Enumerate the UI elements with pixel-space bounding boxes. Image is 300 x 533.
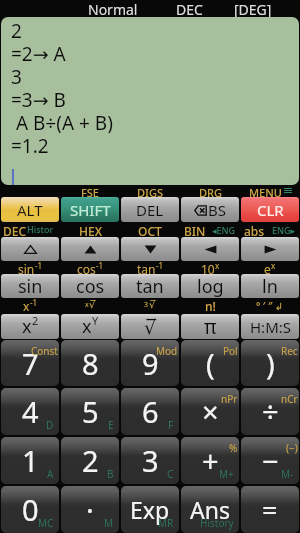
staticText: x [82,314,92,339]
button[interactable]: + [181,437,239,484]
staticText: ALT [17,200,43,220]
button[interactable]: 7 [1,340,59,386]
staticText: M+ [219,467,234,481]
button[interactable]: − [241,437,299,484]
other: Down [144,245,157,254]
button[interactable]: ln [241,274,299,298]
staticText: BS [208,200,226,220]
staticText: √̅ [144,316,157,338]
staticText: Exp [130,494,170,525]
staticText: History [200,516,234,530]
staticText: MENU [249,185,282,197]
staticText: DIGS [137,185,163,197]
button[interactable]: ALT [1,197,59,222]
button[interactable]: sin [1,274,59,298]
button[interactable]: SHIFT [61,197,119,222]
button[interactable]: 8 [61,340,119,386]
staticText: C [167,467,174,481]
staticText: √̅ [149,299,156,311]
button[interactable]: · [61,486,119,533]
staticText: 3 [11,64,22,87]
button[interactable]: 9 [121,340,179,386]
staticText: -1 [30,297,38,308]
button[interactable]: 3 [121,437,179,484]
staticText: sin [18,274,43,298]
staticText: =2→ A [11,41,66,64]
staticText: 10 [201,261,215,274]
staticText: % [229,441,238,455]
staticText: + [202,441,219,480]
staticText: 2 [82,441,99,480]
staticText: cos [77,261,96,274]
button[interactable]: 5 [61,388,119,435]
other: Up [24,245,37,254]
button[interactable]: 1 [1,437,59,484]
button[interactable]: H:M:S [241,314,299,339]
staticText: Pol [223,344,238,358]
staticText: ) [266,344,275,383]
button[interactable]: π [181,314,239,339]
staticText: H:M:S [250,317,291,337]
button[interactable]: 0 [1,486,59,533]
staticText: A [47,467,54,481]
button[interactable]: ( [181,340,239,386]
staticText: cos [76,274,105,298]
staticText: SHIFT [70,200,111,220]
staticText: ° ′ ″ ↲ [256,299,284,313]
staticText: -1 [156,260,164,271]
button[interactable]: x [61,314,119,339]
staticText: OCT [138,223,162,237]
button[interactable]: 2 [61,437,119,484]
staticText: π [204,314,217,339]
button[interactable]: x [1,314,59,339]
button[interactable]: tan [121,274,179,298]
staticText: B [107,467,114,481]
other: Up [84,245,97,254]
button[interactable]: √̅ [121,314,179,339]
staticText: M [104,516,114,530]
button[interactable]: Up [61,237,119,261]
button[interactable]: 6 [121,388,179,435]
button[interactable]: ÷ [241,388,299,435]
other: Right [264,245,277,254]
button[interactable]: Left [181,237,239,261]
button[interactable]: 4 [1,388,59,435]
staticText: x [85,300,89,310]
staticText: 2 [32,314,39,328]
staticText: DEC [176,0,203,17]
staticText: A B÷(A + B) [11,110,113,133]
button[interactable]: Ans [181,486,239,533]
staticText: -1 [35,260,43,271]
button[interactable]: CLR [241,197,299,222]
button[interactable]: Down [121,237,179,261]
staticText: ( [206,344,215,383]
button[interactable]: Up [1,237,59,261]
staticText: DEL [136,200,164,220]
staticText: Y [92,314,99,328]
staticText: Mod [156,344,178,358]
staticText: · [86,490,94,529]
staticText: CLR [257,200,284,220]
staticText: Ans [190,494,230,525]
staticText: nCr [281,392,298,406]
button[interactable]: Exp [121,486,179,533]
staticText: sin [18,261,35,274]
staticText: F [168,418,174,432]
button[interactable]: × [181,388,239,435]
staticText: abs [244,223,265,237]
staticText: x [271,260,276,271]
button[interactable]: cos [61,274,119,298]
button[interactable]: ) [241,340,299,386]
staticText: FSE [81,185,99,197]
staticText: =1.2 [11,133,49,156]
button[interactable]: log [181,274,239,298]
button[interactable]: DEL [121,197,179,222]
staticText: DEC [3,223,27,237]
staticText: HEX [79,223,102,237]
staticText: ln [262,274,278,298]
button[interactable]: Backspace [181,197,239,222]
button[interactable]: = [241,486,299,533]
staticText: x [23,298,30,314]
staticText: 4 [22,392,39,431]
button[interactable]: Right [241,237,299,261]
